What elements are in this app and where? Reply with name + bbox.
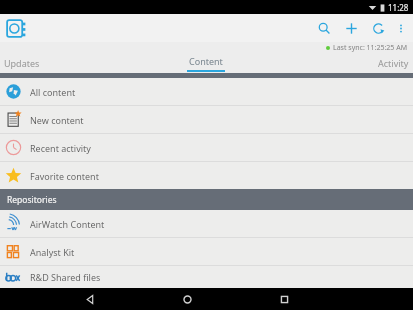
staticText: Repositories (7, 194, 57, 206)
button[interactable]: Activity (275, 53, 413, 73)
staticText: Content (189, 55, 223, 67)
button[interactable]: All content (0, 78, 413, 105)
staticText: All content (30, 86, 76, 98)
staticText: AirWatch Content (30, 218, 105, 230)
button[interactable]: Sync (370, 18, 386, 38)
button[interactable]: Recent apps (274, 289, 294, 309)
button[interactable]: Search (316, 18, 332, 38)
staticText: R&D Shared files (30, 271, 101, 283)
button[interactable]: Analyst Kit (0, 238, 413, 265)
staticText: Recent activity (30, 142, 91, 154)
button[interactable]: New content (0, 106, 413, 133)
button[interactable]: App logo (5, 18, 26, 39)
button[interactable]: Back (80, 289, 100, 309)
staticText: Last sync: 11:25:25 AM (333, 43, 408, 53)
staticText: Updates (4, 57, 40, 69)
button[interactable]: Updates (0, 53, 137, 73)
staticText: New content (30, 114, 84, 126)
button[interactable]: Recent activity (0, 134, 413, 161)
button[interactable]: Content (137, 53, 275, 73)
staticText: 11:28 (388, 2, 409, 13)
button[interactable]: Favorite content (0, 162, 413, 189)
staticText: Analyst Kit (30, 246, 75, 258)
button[interactable]: R&D Shared files (0, 266, 413, 288)
button[interactable]: More options (395, 18, 407, 38)
staticText: Favorite content (30, 170, 99, 182)
button[interactable]: Home (177, 289, 197, 309)
button[interactable]: Add (343, 18, 359, 38)
button[interactable]: AirWatch Content (0, 210, 413, 237)
staticText: Activity (378, 57, 409, 69)
